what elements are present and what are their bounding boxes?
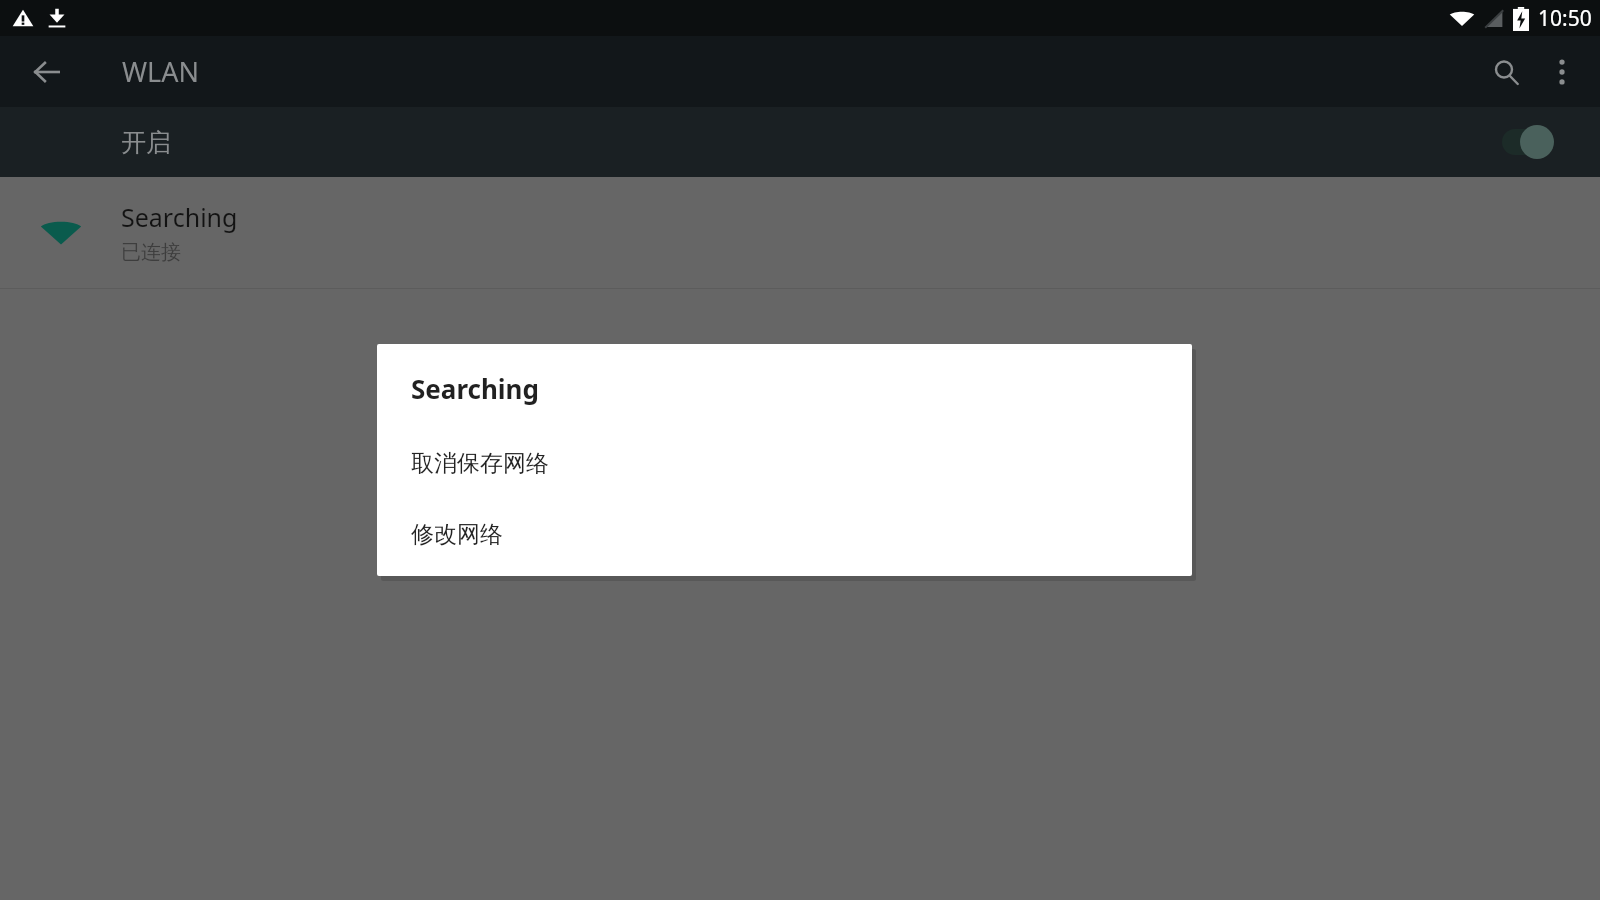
staticText: Searching — [411, 371, 539, 406]
button[interactable]: More options — [1534, 44, 1590, 100]
staticText: 已连接 — [121, 240, 181, 265]
staticText: 10:50 — [1538, 4, 1592, 33]
staticText: Searching — [121, 200, 238, 234]
staticText: 取消保存网络 — [411, 449, 549, 478]
button[interactable]: 开启 — [0, 107, 1600, 177]
staticText: 开启 — [121, 127, 171, 158]
button[interactable]: Search — [1478, 44, 1534, 100]
button[interactable]: 修改网络 — [377, 499, 1192, 570]
button[interactable]: Searching — [0, 177, 1600, 288]
staticText: WLAN — [122, 53, 200, 90]
button[interactable]: 取消保存网络 — [377, 428, 1192, 499]
staticText: 修改网络 — [411, 520, 503, 549]
button[interactable]: Back — [22, 47, 72, 97]
